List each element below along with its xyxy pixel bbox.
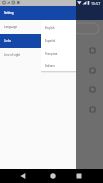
- button[interactable]: Tool: [85, 102, 99, 116]
- staticText: Setting: [4, 11, 14, 15]
- staticText: English: [45, 26, 55, 30]
- staticText: Language: [4, 25, 18, 29]
- button[interactable]: Links: [0, 34, 76, 48]
- button[interactable]: Française: [41, 47, 76, 60]
- staticText: Español: [45, 39, 56, 43]
- button[interactable]: Language: [0, 20, 76, 34]
- button[interactable]: Recents: [72, 169, 86, 183]
- button[interactable]: Italiano: [41, 60, 76, 71]
- button[interactable]: Tool: [85, 63, 99, 77]
- staticText: 15:57: [91, 1, 101, 6]
- button[interactable]: Home: [46, 169, 60, 183]
- button[interactable]: Tool: [85, 43, 99, 57]
- button[interactable]: Line of sight: [0, 48, 76, 62]
- staticText: Française: [45, 52, 58, 56]
- staticText: Line of sight: [4, 53, 21, 57]
- button[interactable]: English: [41, 21, 76, 34]
- staticText: Italiano: [45, 64, 55, 68]
- button[interactable]: Back: [16, 169, 30, 183]
- button[interactable]: Español: [41, 34, 76, 47]
- button[interactable]: Tool: [85, 82, 99, 96]
- button[interactable]: Device frame: [74, 23, 99, 34]
- staticText: Links: [4, 39, 11, 43]
